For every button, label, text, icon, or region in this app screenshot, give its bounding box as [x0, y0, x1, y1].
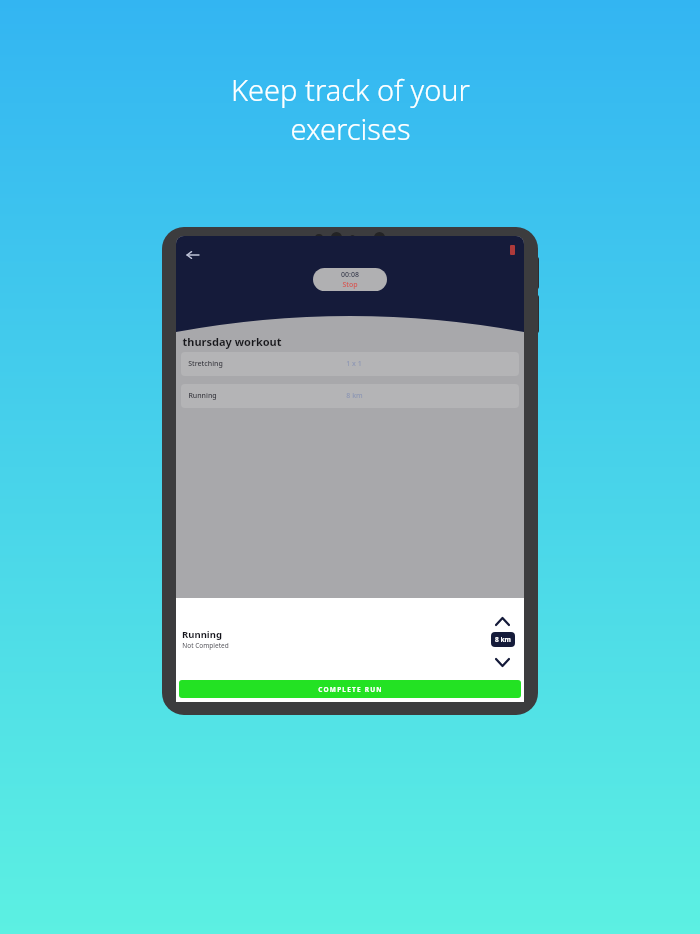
- staticText: exercises: [290, 109, 411, 148]
- button[interactable]: Running: [181, 384, 519, 408]
- staticText: Keep track of your: [231, 70, 470, 109]
- button[interactable]: Stretching: [181, 352, 519, 376]
- staticText: 8 km: [346, 391, 363, 401]
- staticText: 1 x 1: [346, 359, 362, 369]
- staticText: Running: [182, 628, 222, 641]
- staticText: 00:08: [341, 270, 359, 280]
- staticText: Running: [188, 391, 217, 401]
- button[interactable]: Previous exercise: [490, 609, 514, 633]
- staticText: COMPLETE RUN: [318, 685, 383, 694]
- staticText: Stop: [342, 280, 358, 290]
- button[interactable]: Next exercise: [490, 650, 514, 674]
- button[interactable]: Back: [180, 242, 206, 268]
- staticText: 8 km: [495, 635, 511, 644]
- button[interactable]: 00:08: [313, 268, 387, 291]
- staticText: thursday workout: [182, 334, 282, 349]
- button[interactable]: 8 km: [491, 632, 515, 647]
- staticText: Stretching: [188, 359, 223, 369]
- button[interactable]: COMPLETE RUN: [179, 680, 521, 698]
- staticText: Not Completed: [182, 641, 229, 650]
